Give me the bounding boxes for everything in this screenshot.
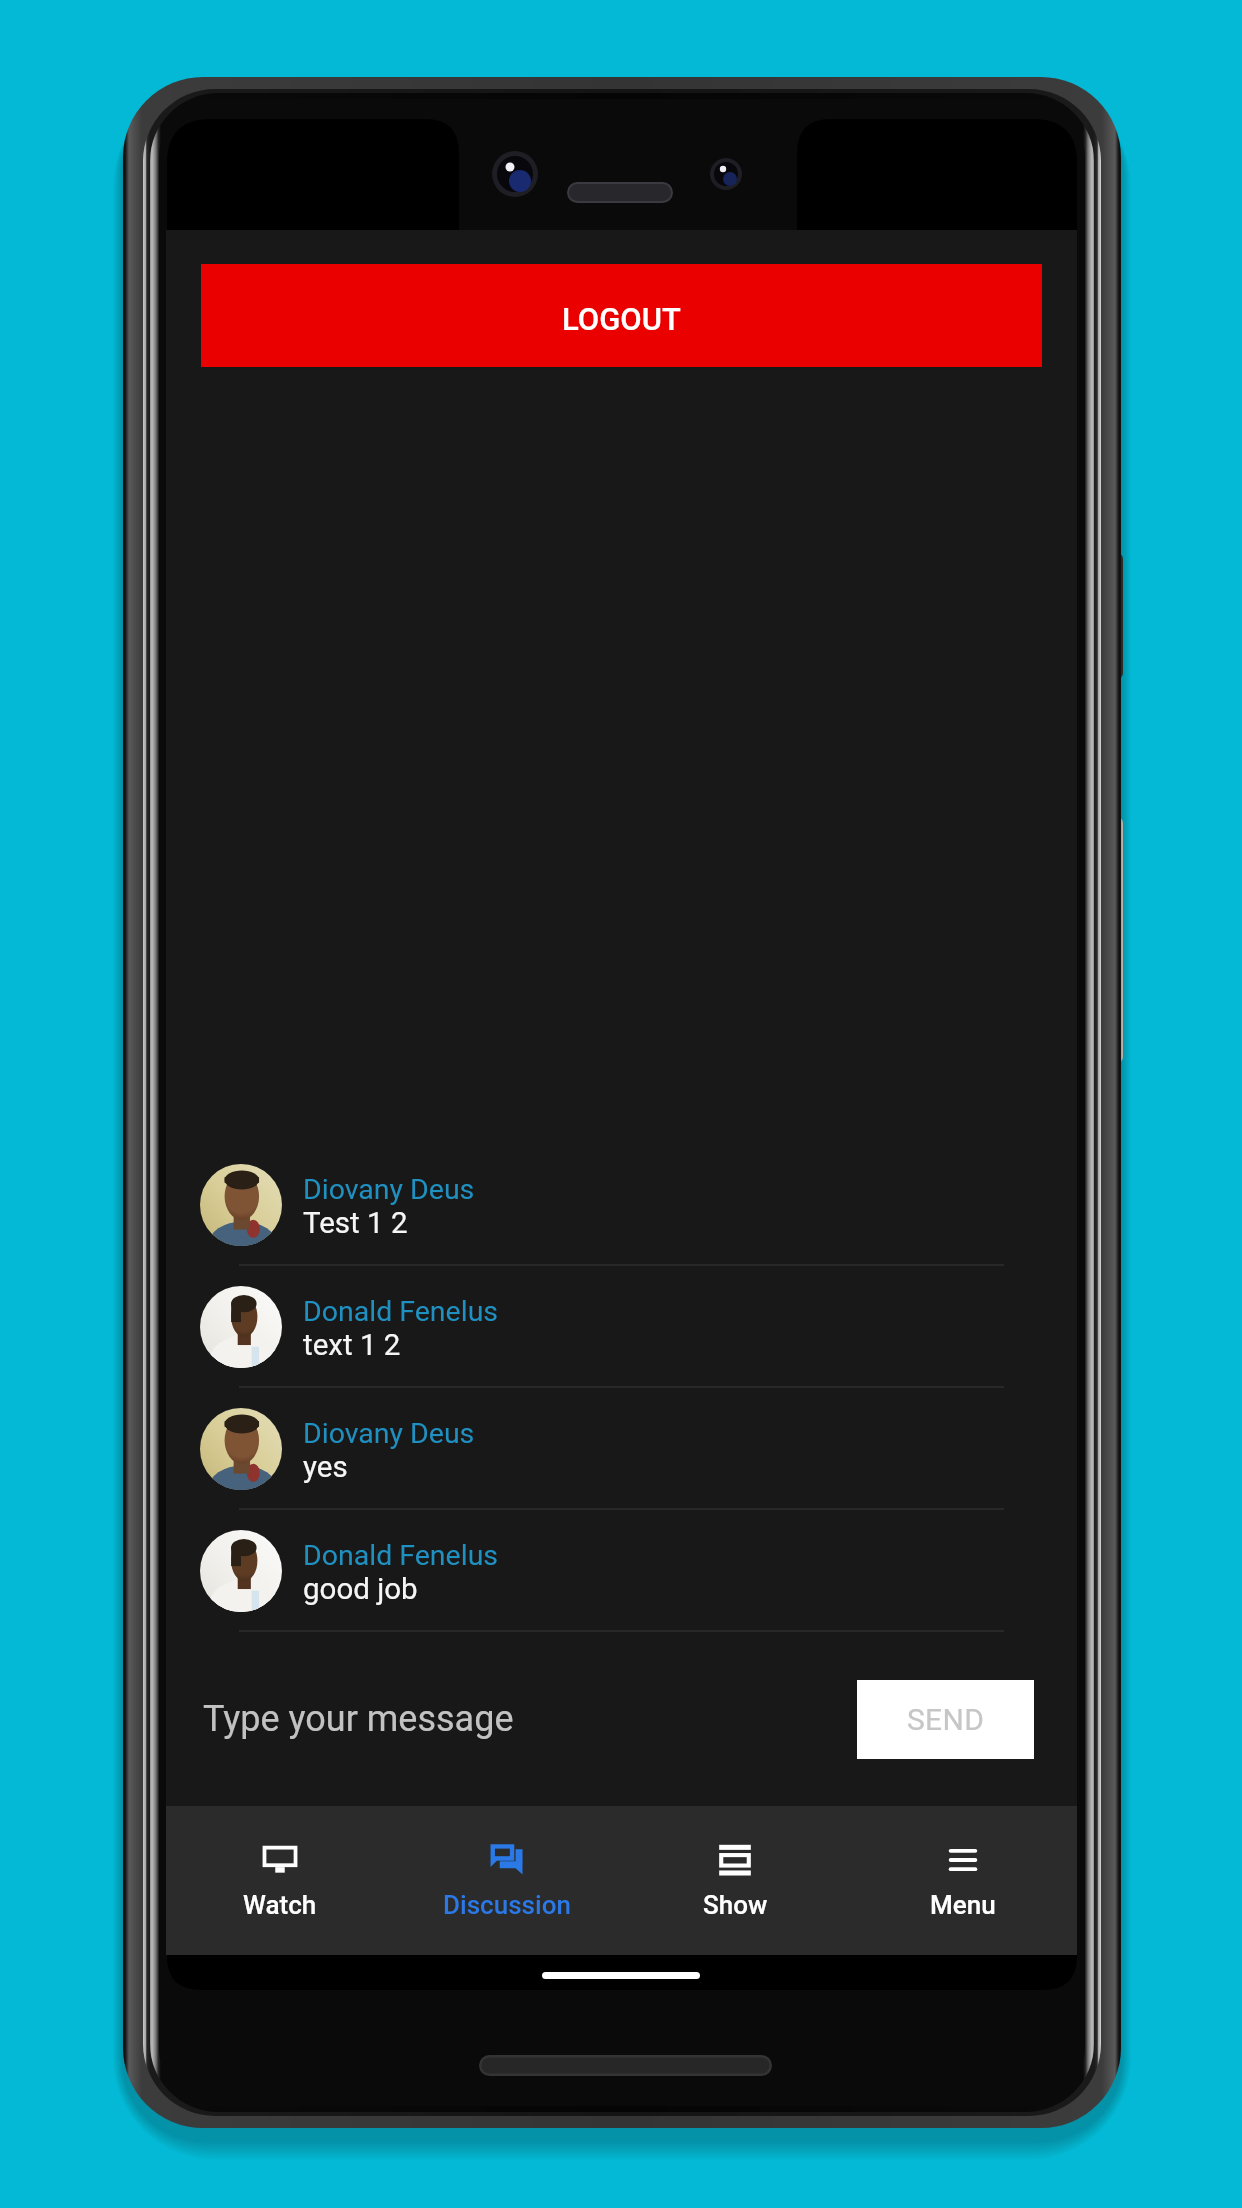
staticText: Watch: [243, 1890, 317, 1920]
staticText: Menu: [930, 1890, 996, 1920]
button[interactable]: Diovany Deus: [166, 1144, 1077, 1266]
staticText: Discussion: [443, 1890, 571, 1920]
staticText: Show: [703, 1890, 768, 1920]
staticText: Diovany Deus: [303, 1417, 475, 1450]
staticText: SEND: [907, 1702, 985, 1737]
staticText: Diovany Deus: [303, 1173, 475, 1206]
staticText: LOGOUT: [562, 301, 681, 337]
button[interactable]: Donald Fenelus: [166, 1510, 1077, 1632]
staticText: good job: [303, 1572, 418, 1607]
button[interactable]: Show: [621, 1806, 849, 1955]
button[interactable]: SEND: [857, 1680, 1034, 1759]
button[interactable]: LOGOUT: [201, 264, 1042, 367]
staticText: text 1 2: [303, 1328, 401, 1363]
staticText: Test 1 2: [303, 1206, 408, 1241]
button[interactable]: Discussion: [393, 1806, 621, 1955]
button[interactable]: Watch: [166, 1806, 393, 1955]
staticText: Type your message: [203, 1698, 514, 1740]
button[interactable]: Menu: [849, 1806, 1077, 1955]
button[interactable]: Diovany Deus: [166, 1388, 1077, 1510]
staticText: yes: [303, 1450, 348, 1485]
staticText: Donald Fenelus: [303, 1539, 499, 1572]
button[interactable]: Donald Fenelus: [166, 1266, 1077, 1388]
staticText: Donald Fenelus: [303, 1295, 499, 1328]
